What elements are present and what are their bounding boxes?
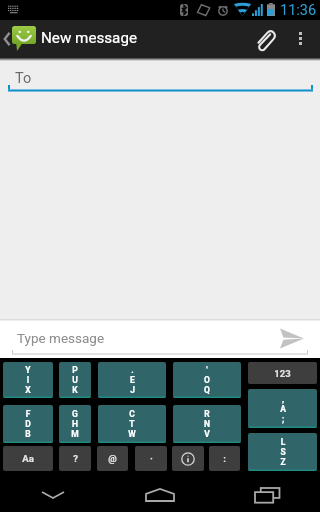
button[interactable]: · xyxy=(135,446,167,471)
button[interactable]: C T W xyxy=(98,405,166,443)
staticText: · xyxy=(150,453,153,464)
button[interactable]: L S Z xyxy=(248,433,317,471)
button[interactable]: Recent apps xyxy=(213,478,320,512)
button[interactable]: Home xyxy=(106,478,213,512)
button[interactable]: R N V xyxy=(173,405,241,443)
button[interactable]: Navigate up xyxy=(0,20,38,57)
staticText: Y I X xyxy=(25,365,31,395)
staticText: , A ; xyxy=(280,394,286,424)
staticText: Type message xyxy=(17,330,105,346)
staticText: R N V xyxy=(204,409,210,439)
staticText: : xyxy=(223,453,226,464)
button[interactable]: Aa xyxy=(3,446,53,471)
staticText: F D B xyxy=(25,409,31,439)
button[interactable]: Send xyxy=(270,319,320,358)
staticText: Aa xyxy=(22,453,34,464)
staticText: @ xyxy=(108,453,117,464)
button[interactable]: More options xyxy=(285,20,315,57)
staticText: L S Z xyxy=(280,437,286,467)
staticText: New message xyxy=(41,29,137,47)
button[interactable]: @ xyxy=(97,446,128,471)
staticText: ' O Q xyxy=(204,365,210,395)
button[interactable]: Type message xyxy=(0,319,270,358)
staticText: ? xyxy=(73,453,78,464)
button[interactable]: . E J xyxy=(98,362,166,398)
staticText: C T W xyxy=(128,409,136,439)
button[interactable]: Hide keyboard xyxy=(0,478,106,512)
staticText: P U K xyxy=(72,365,78,395)
button[interactable]: 123 xyxy=(248,362,317,384)
button[interactable]: To xyxy=(0,57,320,92)
button[interactable]: P U K xyxy=(59,362,91,398)
button[interactable]: F D B xyxy=(3,405,53,443)
staticText: G H M xyxy=(71,409,79,439)
button[interactable]: G H M xyxy=(59,405,91,443)
button[interactable]: Keyboard info xyxy=(172,446,204,471)
button[interactable]: Attach xyxy=(243,20,285,57)
button[interactable]: , A ; xyxy=(248,389,317,428)
staticText: 123 xyxy=(274,368,291,379)
staticText: . E J xyxy=(130,365,135,395)
button[interactable]: ' O Q xyxy=(173,362,241,398)
button[interactable]: : xyxy=(209,446,240,471)
staticText: To xyxy=(15,70,32,87)
button[interactable]: Y I X xyxy=(3,362,53,398)
button[interactable]: ? xyxy=(59,446,91,471)
staticText: 11:36 xyxy=(280,2,317,19)
